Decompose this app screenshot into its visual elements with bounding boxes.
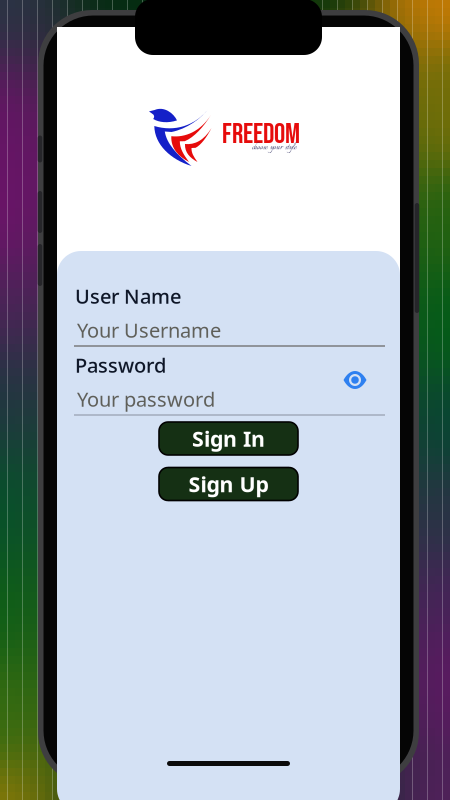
staticText: Sign Up <box>188 470 268 498</box>
staticText: User Name <box>75 283 181 309</box>
staticText: Password <box>75 352 166 378</box>
staticText: Your Username <box>77 317 221 343</box>
staticText: choose your style <box>252 141 297 154</box>
staticText: FREEDOM <box>222 118 300 151</box>
staticText: Sign In <box>192 424 265 453</box>
staticText: Your password <box>77 386 215 412</box>
button[interactable]: Sign Up <box>159 467 298 500</box>
button[interactable]: Show password <box>338 365 372 395</box>
button[interactable]: Sign In <box>159 422 298 455</box>
